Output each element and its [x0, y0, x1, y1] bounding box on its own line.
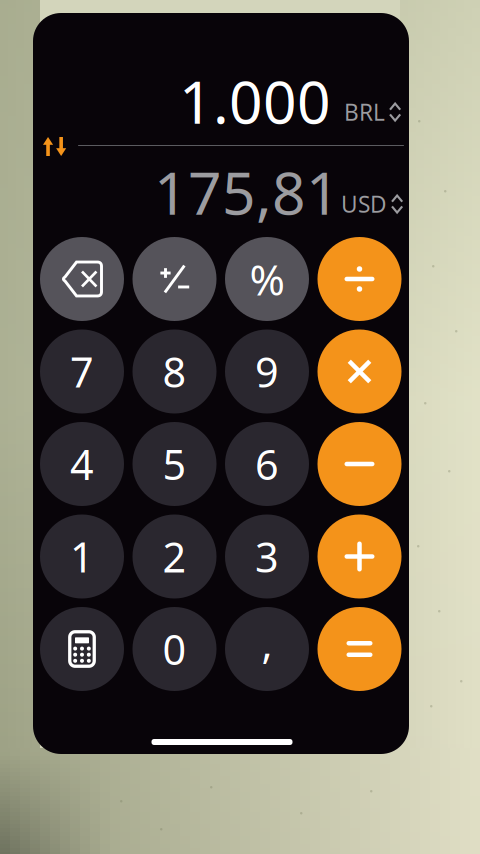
staticText: 5	[162, 437, 186, 491]
button[interactable]: Currency BRL	[340, 91, 404, 133]
staticText: 3	[255, 529, 279, 584]
staticText: 9	[255, 344, 279, 399]
button[interactable]: 4	[40, 422, 124, 506]
button[interactable]: 6	[225, 422, 309, 506]
staticText: 8	[162, 344, 186, 399]
staticText: ,	[261, 616, 272, 670]
button[interactable]: 5	[132, 422, 216, 506]
button[interactable]: Minus	[317, 422, 401, 506]
button[interactable]: 8	[132, 329, 216, 413]
button[interactable]: Plus minus	[132, 237, 216, 321]
staticText: 1	[70, 529, 94, 584]
staticText: 0	[162, 622, 186, 676]
staticText: 6	[255, 437, 279, 491]
staticText: 1.000	[179, 62, 331, 140]
button[interactable]: 7	[40, 329, 124, 413]
button[interactable]: 2	[132, 514, 216, 598]
button[interactable]: Equals	[317, 607, 401, 691]
button[interactable]: Currency USD	[337, 183, 406, 225]
button[interactable]: Comma	[225, 607, 309, 691]
button[interactable]: 3	[225, 514, 309, 598]
staticText: 4	[70, 437, 94, 491]
button[interactable]: Multiply	[317, 329, 401, 413]
staticText: USD	[341, 189, 387, 219]
button[interactable]: 9	[225, 329, 309, 413]
staticText: %	[249, 251, 284, 307]
staticText: 175,81	[154, 153, 340, 231]
button[interactable]: Percent	[225, 237, 309, 321]
button[interactable]: 1	[40, 514, 124, 598]
staticText: 7	[70, 344, 94, 399]
staticText: 2	[162, 529, 186, 584]
button[interactable]: Divide	[317, 237, 401, 321]
button[interactable]: 0	[132, 607, 216, 691]
button[interactable]: Swap currencies	[37, 131, 72, 162]
button[interactable]: Plus	[317, 514, 401, 598]
button[interactable]: Delete	[40, 237, 124, 321]
button[interactable]: Calculator	[40, 607, 124, 691]
staticText: BRL	[344, 97, 385, 127]
